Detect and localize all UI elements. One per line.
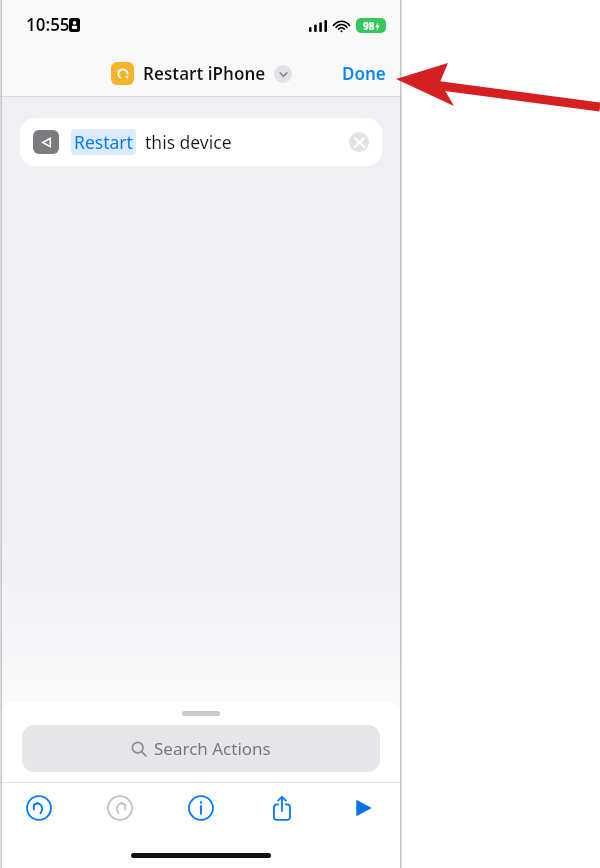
button[interactable]: Remove action: [349, 132, 369, 152]
button[interactable]: Redo: [97, 785, 143, 831]
button[interactable]: Information: [178, 785, 224, 831]
staticText: Restart iPhone: [143, 62, 266, 85]
button[interactable]: Action icon: [20, 118, 382, 166]
staticText: 98: [363, 19, 375, 33]
button[interactable]: Restart iPhone: [111, 62, 292, 85]
staticText: this device: [145, 130, 232, 154]
button[interactable]: Search Actions: [22, 725, 380, 772]
other: Action icon: [33, 130, 59, 154]
other: Expand shortcut menu: [274, 65, 292, 83]
staticText: Done: [342, 62, 386, 85]
button[interactable]: Run shortcut: [340, 785, 386, 831]
button[interactable]: Share: [259, 785, 305, 831]
button[interactable]: Done: [326, 54, 402, 93]
button[interactable]: Undo: [16, 785, 62, 831]
staticText: 10:55: [26, 13, 70, 36]
staticText: Search Actions: [154, 737, 271, 760]
staticText: Restart: [74, 130, 133, 154]
